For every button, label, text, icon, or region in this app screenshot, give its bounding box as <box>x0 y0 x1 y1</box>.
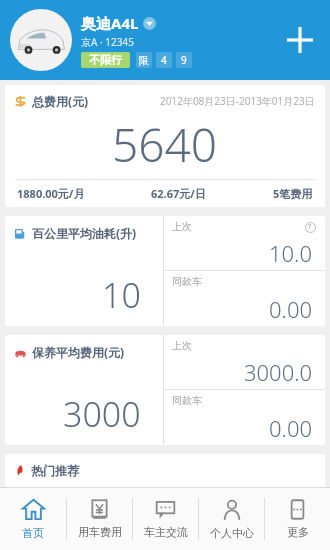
button[interactable]: 热门推荐 <box>5 454 325 487</box>
staticText: 百公里平均油耗(升) <box>32 225 137 241</box>
button[interactable]: 保养平均费用(元) <box>5 335 325 445</box>
staticText: 0.00 <box>269 294 313 324</box>
staticText: 1880.00元/月 <box>17 186 85 201</box>
staticText: 上次 <box>172 339 192 352</box>
staticText: 不限行 <box>89 53 122 67</box>
staticText: 9 <box>181 53 187 67</box>
staticText: 首页 <box>22 526 44 540</box>
staticText: 5640 <box>112 113 218 176</box>
staticText: 5笔费用 <box>273 186 313 201</box>
staticText: 62.67元/日 <box>151 186 206 201</box>
button[interactable]: 更多 <box>265 488 330 550</box>
staticText: 2012年08月23日-2013年01月23日 <box>160 94 315 108</box>
other: Change car <box>143 17 156 30</box>
staticText: 同款车 <box>172 275 202 288</box>
staticText: 更多 <box>287 525 309 539</box>
staticText: 上次 <box>172 220 192 233</box>
button[interactable]: 不限行 <box>89 52 122 68</box>
staticText: 热门推荐 <box>31 463 79 478</box>
staticText: ? <box>308 222 312 232</box>
staticText: 4 <box>161 53 167 67</box>
staticText: 保养平均费用(元) <box>32 344 125 360</box>
button[interactable]: 个人中心 <box>199 488 264 550</box>
button[interactable]: 用车费用 <box>67 488 132 550</box>
button[interactable]: 车主交流 <box>133 488 198 550</box>
staticText: 奥迪A4L <box>81 13 139 33</box>
staticText: 10 <box>102 272 141 318</box>
staticText: 0.00 <box>269 413 313 443</box>
button[interactable]: 奥迪A4L <box>81 13 156 33</box>
staticText: 10.0 <box>269 238 313 268</box>
button[interactable]: Help <box>303 220 317 234</box>
staticText: 个人中心 <box>210 526 254 540</box>
staticText: 用车费用 <box>78 525 122 539</box>
staticText: 京A · 12345 <box>81 35 134 49</box>
button[interactable]: 总费用(元) <box>5 85 325 207</box>
staticText: 3000.0 <box>244 357 313 387</box>
staticText: 同款车 <box>172 394 202 407</box>
button[interactable]: Add <box>280 20 320 60</box>
staticText: 总费用(元) <box>32 93 89 109</box>
staticText: 3000 <box>63 391 141 437</box>
staticText: 限 <box>139 54 149 67</box>
button[interactable]: 首页 <box>0 488 66 550</box>
staticText: 车主交流 <box>144 525 188 539</box>
button[interactable]: 百公里平均油耗(升) <box>5 216 325 326</box>
